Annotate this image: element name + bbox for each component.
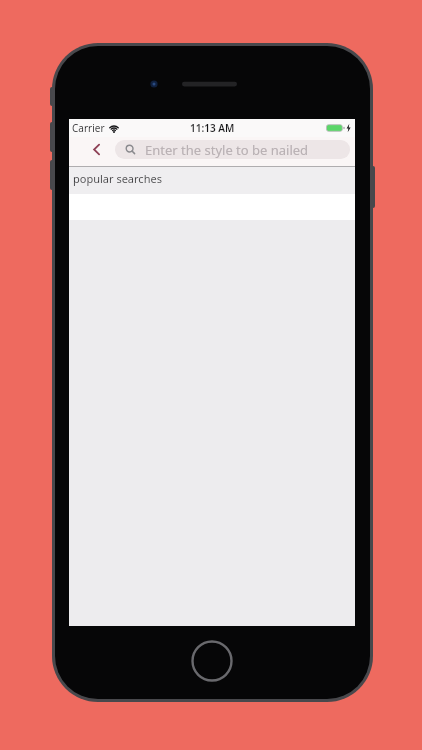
button[interactable]: Enter the style to be nailed (115, 140, 350, 159)
staticText: Enter the style to be nailed (145, 141, 309, 159)
staticText: 11:13 AM (190, 121, 235, 135)
button[interactable] (85, 138, 107, 160)
staticText: popular searches (73, 171, 162, 186)
staticText: Carrier (72, 121, 105, 135)
